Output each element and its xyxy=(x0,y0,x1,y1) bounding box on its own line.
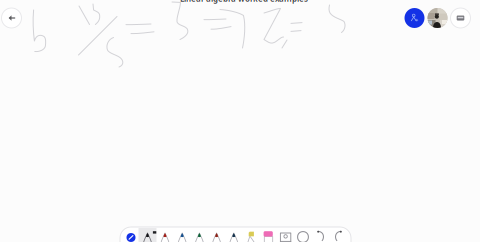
button[interactable]: Ink colour xyxy=(126,232,136,242)
button[interactable]: Redo xyxy=(333,228,344,242)
button[interactable]: Undo xyxy=(315,228,326,242)
button[interactable]: Dark pen xyxy=(229,232,238,242)
button[interactable]: More options xyxy=(450,8,470,28)
button[interactable]: Green pen xyxy=(195,232,204,242)
button[interactable]: Invite collaborators xyxy=(404,8,424,28)
button[interactable]: Your account xyxy=(427,8,447,28)
button[interactable]: Blue pen xyxy=(178,232,187,242)
button[interactable]: Back xyxy=(1,8,21,28)
button[interactable]: Lasso select xyxy=(280,229,292,242)
button[interactable]: Brown pen xyxy=(212,232,221,242)
button[interactable]: Pen xyxy=(143,232,152,242)
button[interactable]: Eraser xyxy=(263,230,274,242)
button[interactable]: Shapes xyxy=(297,229,309,242)
staticText: Linear algebra worked examples xyxy=(180,0,308,4)
button[interactable]: Red pen xyxy=(160,232,169,242)
button[interactable]: Highlighter xyxy=(245,230,256,242)
